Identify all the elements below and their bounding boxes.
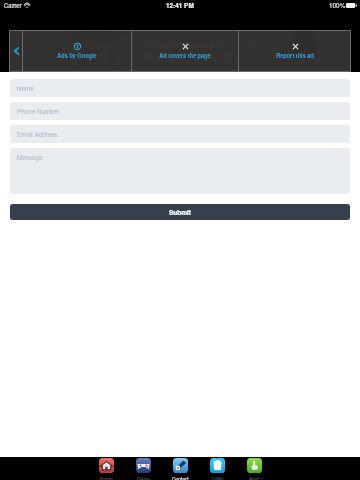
staticText: Message <box>17 153 43 162</box>
staticText: 100% <box>329 1 346 10</box>
button[interactable]: Contact <box>162 457 199 480</box>
button[interactable]: Home <box>88 457 125 480</box>
button[interactable]: You're displaying a 72 test Ads by Googl… <box>132 31 238 71</box>
staticText: 12:41 PM <box>166 1 194 10</box>
button[interactable]: Great <box>23 31 131 71</box>
staticText: Phone Number <box>17 107 60 116</box>
staticText: Home <box>100 475 113 480</box>
staticText: Ad covers the page <box>159 52 211 60</box>
button[interactable]: Back <box>10 31 22 71</box>
staticText: Utility <box>212 475 224 480</box>
button[interactable]: Email Address <box>10 125 350 143</box>
button[interactable]: Phone Number <box>10 102 350 120</box>
button[interactable]: x 90 <box>239 31 350 71</box>
staticText: Carrier <box>4 1 22 9</box>
staticText: You're displaying a 72 test Ads by Googl… <box>143 38 238 71</box>
button[interactable]: Utility <box>199 457 236 480</box>
button[interactable]: Game <box>125 457 162 480</box>
staticText: Name <box>17 84 34 93</box>
staticText: Alert <box>249 475 260 480</box>
button[interactable]: Submit <box>10 204 350 220</box>
staticText: Email Address <box>17 130 58 139</box>
staticText: Report this ad <box>276 52 314 60</box>
staticText: Submit <box>169 208 192 217</box>
staticText: Contact <box>172 475 189 480</box>
button[interactable]: Alert <box>236 457 273 480</box>
staticText: Ads by Google <box>57 52 97 60</box>
staticText: Game <box>137 475 151 480</box>
